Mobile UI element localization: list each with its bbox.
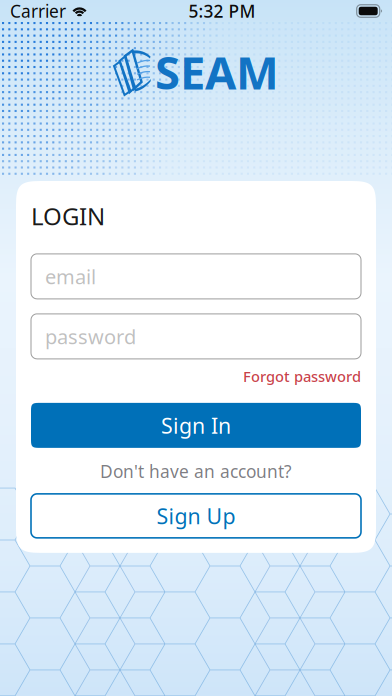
staticText: 5:32 PM xyxy=(188,0,255,22)
staticText: Carrier xyxy=(10,0,66,22)
button[interactable]: Sign In xyxy=(31,403,361,448)
button[interactable]: Sign Up xyxy=(31,494,361,538)
staticText: Sign In xyxy=(161,411,231,439)
staticText: email xyxy=(45,263,96,290)
staticText: password xyxy=(45,323,136,350)
staticText: Forgot password xyxy=(243,367,361,386)
button[interactable]: Forgot password xyxy=(31,369,361,384)
staticText: Sign Up xyxy=(156,502,235,530)
staticText: LOGIN xyxy=(31,200,105,232)
staticText: SEAM xyxy=(155,42,279,102)
staticText: Don't have an account? xyxy=(100,460,292,483)
